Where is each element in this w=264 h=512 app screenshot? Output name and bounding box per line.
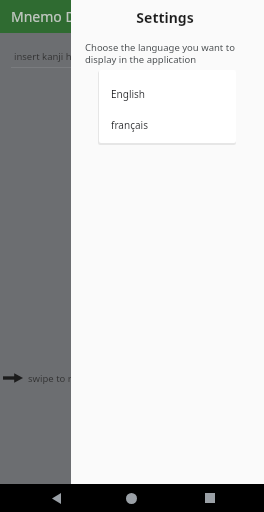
staticText: français <box>111 118 148 132</box>
staticText: Choose the language you want to display … <box>85 41 235 66</box>
button[interactable]: Home <box>119 486 143 510</box>
staticText: Settings <box>136 8 194 27</box>
button[interactable]: Recent apps <box>198 486 222 510</box>
staticText: English <box>111 87 146 101</box>
staticText: Mnemo Draw <box>11 7 101 26</box>
other: Swipe right <box>3 372 23 384</box>
staticText: swipe to right <box>28 372 90 385</box>
button[interactable]: Back <box>44 486 68 510</box>
staticText: insert kanji here <box>14 50 87 63</box>
button[interactable]: English <box>99 82 236 106</box>
button[interactable]: français <box>99 113 236 137</box>
